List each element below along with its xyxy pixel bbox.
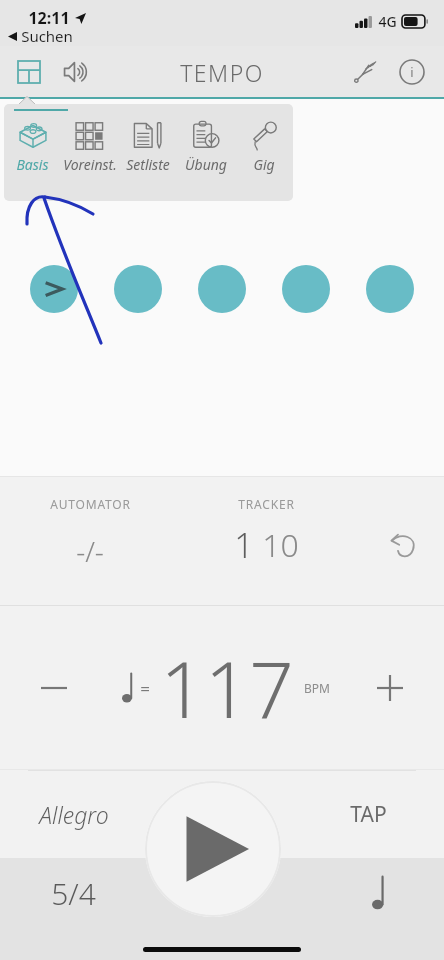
staticText: Basis xyxy=(16,155,49,174)
staticText: Suchen xyxy=(21,26,73,46)
staticText: 4G xyxy=(378,12,397,31)
button[interactable]: Beat 5 xyxy=(366,265,414,313)
staticText: Allegro xyxy=(39,799,109,830)
button[interactable]: TAP xyxy=(318,784,418,844)
staticText: 10 xyxy=(262,523,299,567)
button[interactable]: Übung xyxy=(177,114,235,201)
staticText: AUTOMATOR xyxy=(50,496,131,512)
button[interactable]: Sound xyxy=(54,50,98,94)
button[interactable]: Tuner xyxy=(344,51,386,93)
staticText: TEMPO xyxy=(180,57,264,88)
button[interactable]: Beat 2 xyxy=(114,265,162,313)
button[interactable]: Info xyxy=(392,52,432,92)
button[interactable]: Play xyxy=(145,781,281,917)
staticText: 1 xyxy=(234,522,254,568)
button[interactable]: Reset xyxy=(382,524,426,568)
button[interactable]: Beat 3 xyxy=(198,265,246,313)
staticText: i xyxy=(410,63,414,81)
button[interactable]: Increase tempo xyxy=(364,662,416,714)
staticText: Setliste xyxy=(126,155,170,174)
staticText: -/- xyxy=(76,532,104,570)
button[interactable]: Beat 1 xyxy=(30,265,78,313)
button[interactable]: Setliste xyxy=(119,114,177,201)
button[interactable]: Note value xyxy=(340,864,420,922)
staticText: Voreinst. xyxy=(63,155,117,174)
staticText: TAP xyxy=(350,800,387,829)
button[interactable]: Gig xyxy=(235,114,293,201)
button[interactable]: Decrease tempo xyxy=(28,662,80,714)
staticText: Übung xyxy=(185,155,227,174)
staticText: 5/4 xyxy=(51,873,96,914)
button[interactable]: Allegro xyxy=(14,784,134,844)
button[interactable]: Beat 4 xyxy=(282,265,330,313)
staticText: TRACKER xyxy=(238,496,295,512)
button[interactable]: Layout xyxy=(8,51,50,93)
button[interactable]: Voreinst. xyxy=(61,114,119,201)
staticText: = xyxy=(140,677,150,700)
button[interactable]: Basis xyxy=(4,114,61,201)
button[interactable]: TRACKER xyxy=(196,496,336,568)
button[interactable]: 5/4 xyxy=(18,864,128,922)
button[interactable]: AUTOMATOR xyxy=(20,496,160,570)
staticText: BPM xyxy=(304,680,330,696)
staticText: Gig xyxy=(253,155,275,174)
staticText: 117 xyxy=(160,635,294,741)
staticText: 12:11 xyxy=(28,7,70,29)
